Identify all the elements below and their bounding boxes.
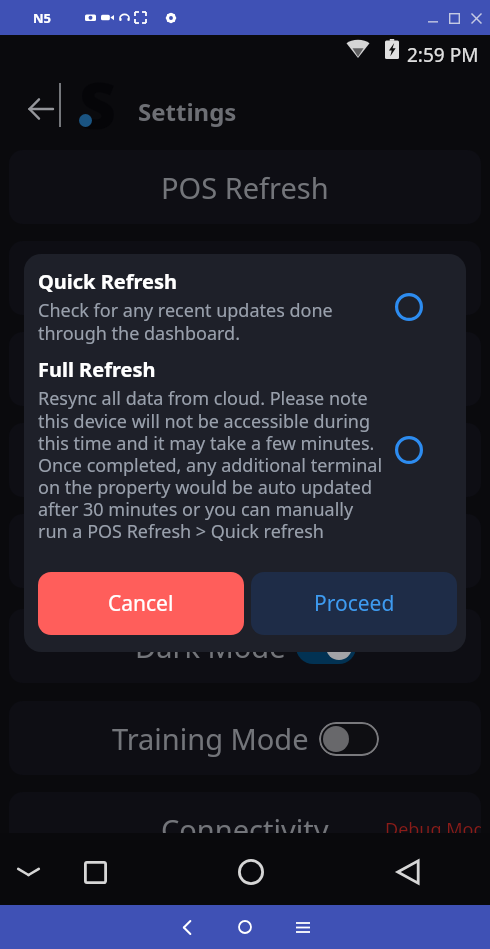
staticText: Quick Refresh	[38, 268, 178, 295]
staticText: Payment Settings	[126, 350, 365, 389]
staticText: Connectivity	[161, 810, 329, 849]
staticText: Debug Mode	[385, 817, 481, 842]
staticText: S	[79, 61, 116, 134]
button[interactable]: Recent apps	[71, 848, 119, 896]
staticText: 2:59 PM	[407, 42, 479, 68]
button[interactable]: Select option	[388, 429, 430, 471]
staticText: Proceed	[314, 589, 395, 618]
button[interactable]: Appearance	[9, 514, 481, 588]
button[interactable]: Proceed	[251, 572, 457, 635]
button[interactable]: Training Mode	[9, 701, 481, 775]
staticText: Resync all data from cloud. Please note …	[38, 386, 383, 543]
button[interactable]: Back	[165, 905, 209, 949]
button[interactable]: Payment Settings	[9, 332, 481, 406]
button[interactable]: Back	[384, 848, 432, 896]
staticText: Device Settings	[141, 441, 349, 480]
staticText: Settings	[138, 95, 237, 128]
button[interactable]: Hide navigation bar	[4, 848, 52, 896]
button[interactable]: Printers	[9, 241, 481, 315]
staticText: Dark Mode	[135, 627, 286, 666]
button[interactable]: Select option	[388, 286, 430, 328]
button[interactable]: Back	[16, 87, 64, 131]
button[interactable]: Home	[223, 905, 267, 949]
staticText: Cancel	[108, 589, 174, 618]
staticText: Training Mode	[112, 719, 309, 758]
staticText: Check for any recent updates done throug…	[38, 298, 333, 345]
button[interactable]: Device Settings	[9, 423, 481, 497]
button[interactable]: POS Refresh	[9, 150, 481, 224]
button[interactable]: Cancel	[38, 572, 244, 635]
button[interactable]: Menu	[281, 905, 325, 949]
staticText: Full Refresh	[38, 356, 156, 383]
button[interactable]: Dark Mode	[9, 609, 481, 683]
staticText: Appearance	[164, 532, 327, 571]
staticText: N5	[33, 9, 52, 27]
button[interactable]: Home	[227, 848, 275, 896]
staticText: POS Refresh	[161, 168, 329, 207]
button[interactable]: Connectivity	[9, 792, 481, 866]
